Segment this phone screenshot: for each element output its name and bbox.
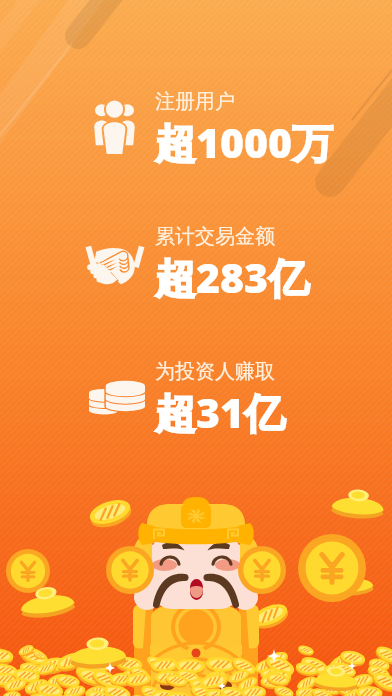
staticText: 注册用户: [155, 89, 235, 114]
staticText: 超31亿: [155, 384, 286, 440]
staticText: 累计交易金额: [155, 224, 275, 249]
staticText: 超283亿: [155, 249, 310, 305]
staticText: 为投资人赚取: [155, 359, 275, 384]
staticText: 超1000万: [155, 114, 334, 170]
